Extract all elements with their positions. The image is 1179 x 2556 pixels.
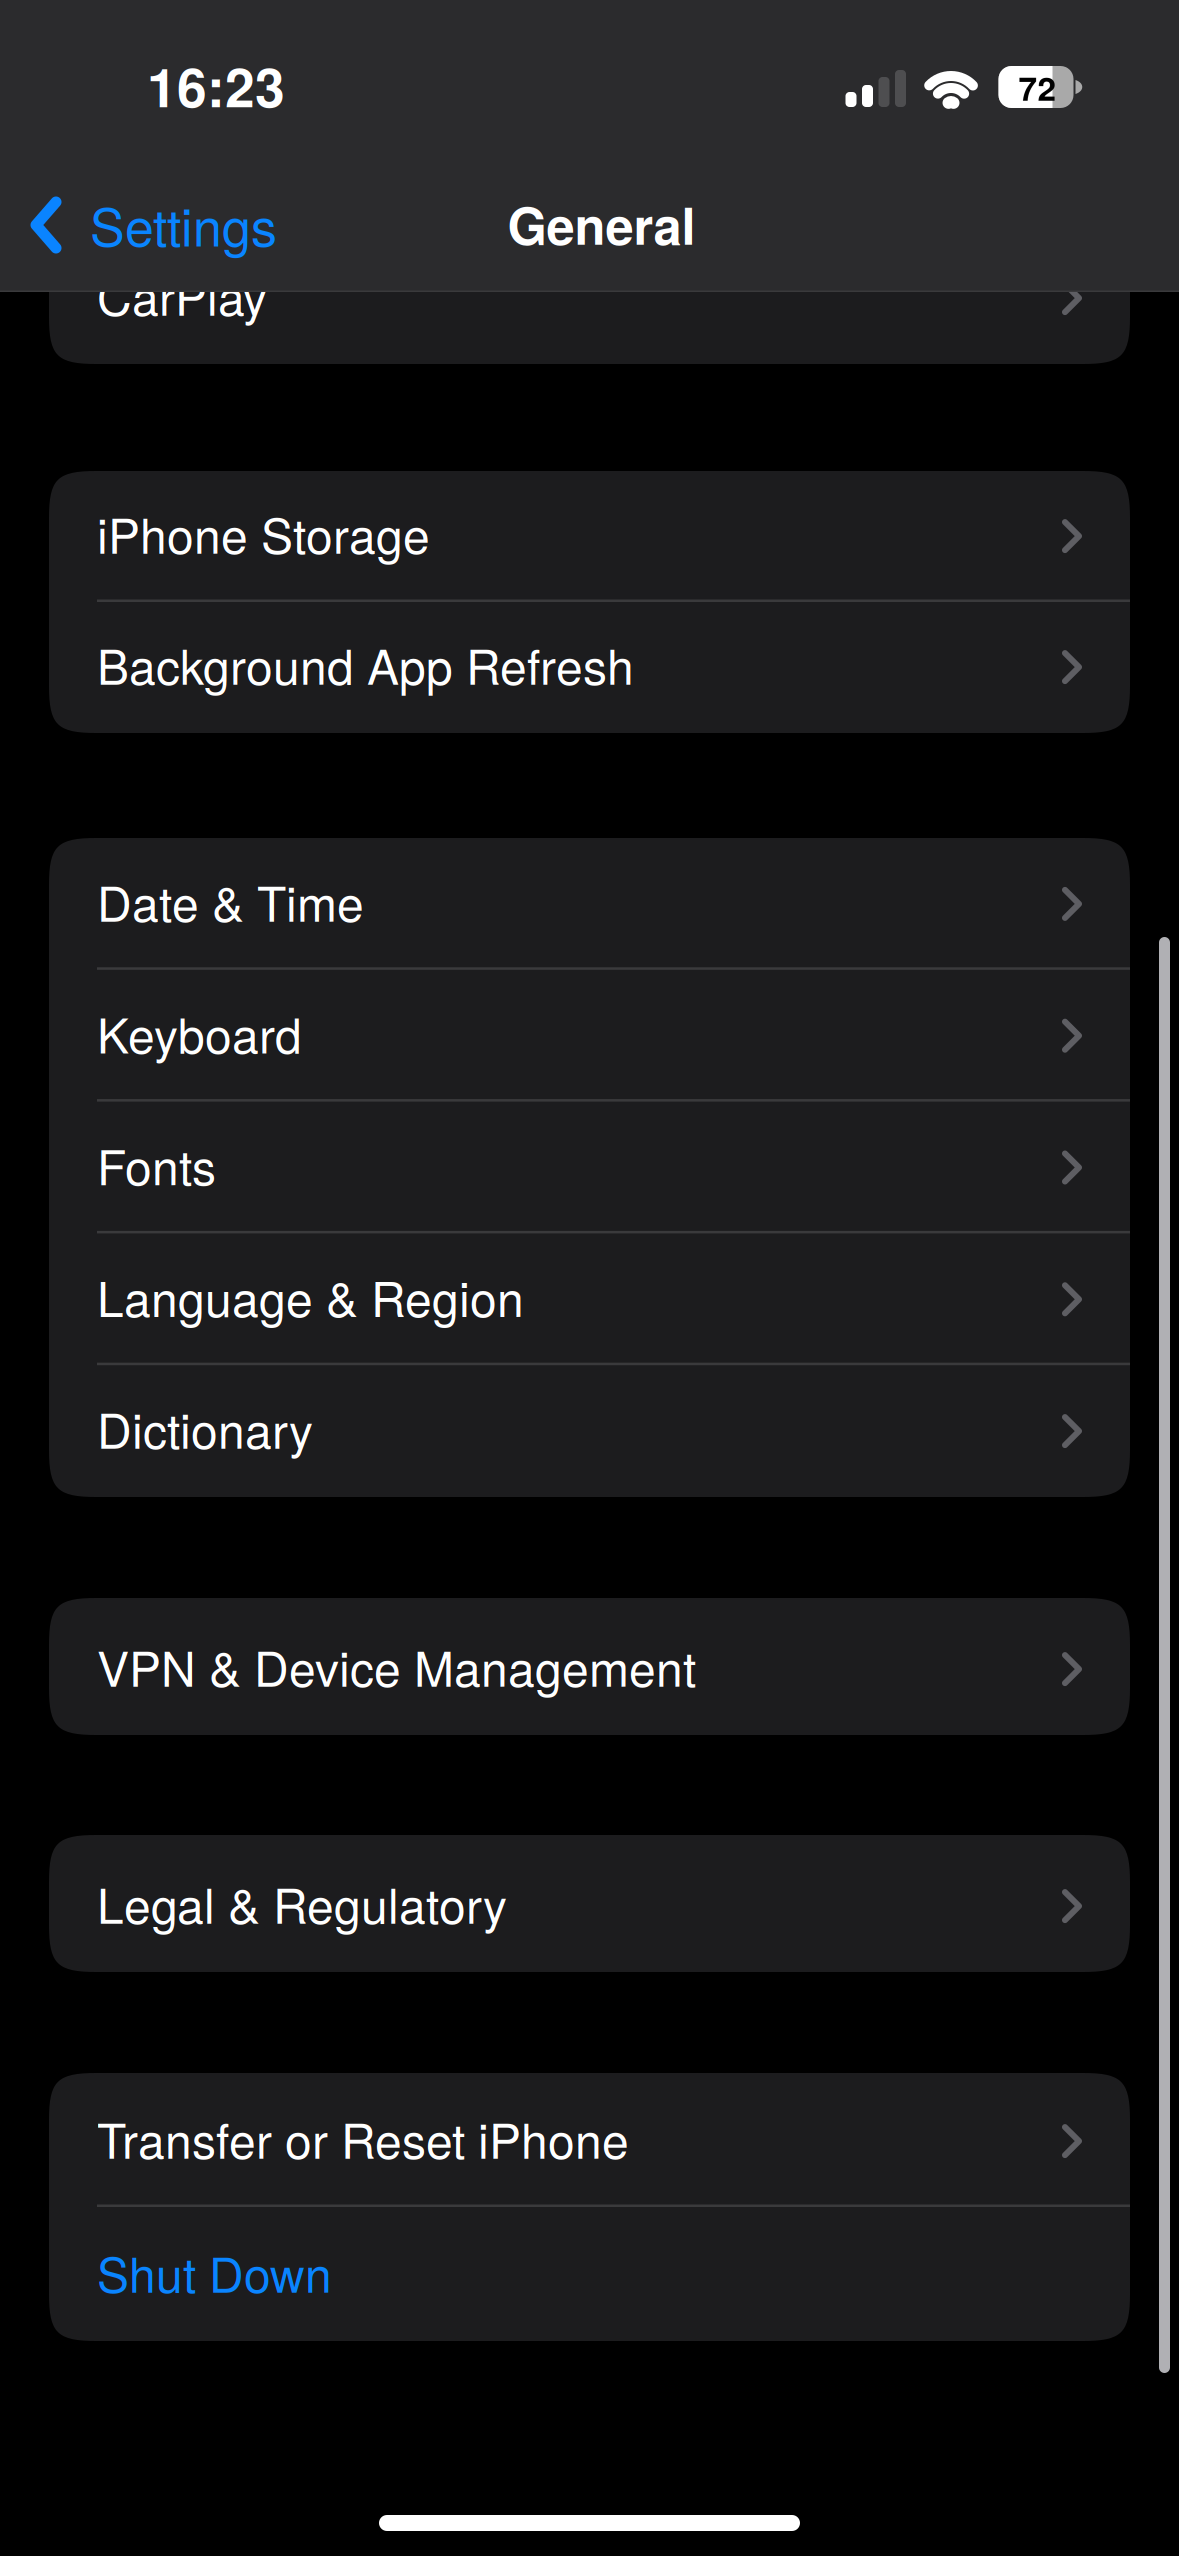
staticText: Fonts [97,1130,216,1199]
staticText: 72 [1018,63,1056,111]
button[interactable]: Dictionary [49,1365,1130,1497]
button[interactable]: Keyboard [49,970,1130,1102]
staticText: iPhone Storage [97,499,430,567]
button[interactable]: iPhone Storage [49,471,1130,602]
button[interactable]: VPN & Device Management [49,1598,1130,1735]
staticText: Transfer or Reset iPhone [97,2104,629,2172]
staticText: General [507,188,695,260]
button[interactable]: CarPlay [49,232,1130,364]
staticText: Shut Down [97,2238,332,2306]
button[interactable]: Language & Region [49,1233,1130,1365]
button[interactable]: Legal & Regulatory [49,1835,1130,1972]
staticText: Settings [90,187,277,261]
staticText: VPN & Device Management [97,1632,696,1700]
button[interactable]: Date & Time [49,838,1130,970]
staticText: Background App Refresh [97,630,634,698]
staticText: Dictionary [97,1394,313,1462]
staticText: Legal & Regulatory [97,1869,507,1937]
staticText: Date & Time [97,866,364,935]
button[interactable]: Shut Down [49,2207,1130,2341]
button[interactable]: Background App Refresh [49,602,1130,733]
button[interactable]: Transfer or Reset iPhone [49,2073,1130,2207]
staticText: Language & Region [97,1262,524,1331]
staticText: CarPlay [97,261,267,329]
button[interactable]: Settings [0,159,301,289]
staticText: Keyboard [97,998,302,1067]
button[interactable]: Fonts [49,1102,1130,1233]
staticText: 16:23 [147,47,285,124]
